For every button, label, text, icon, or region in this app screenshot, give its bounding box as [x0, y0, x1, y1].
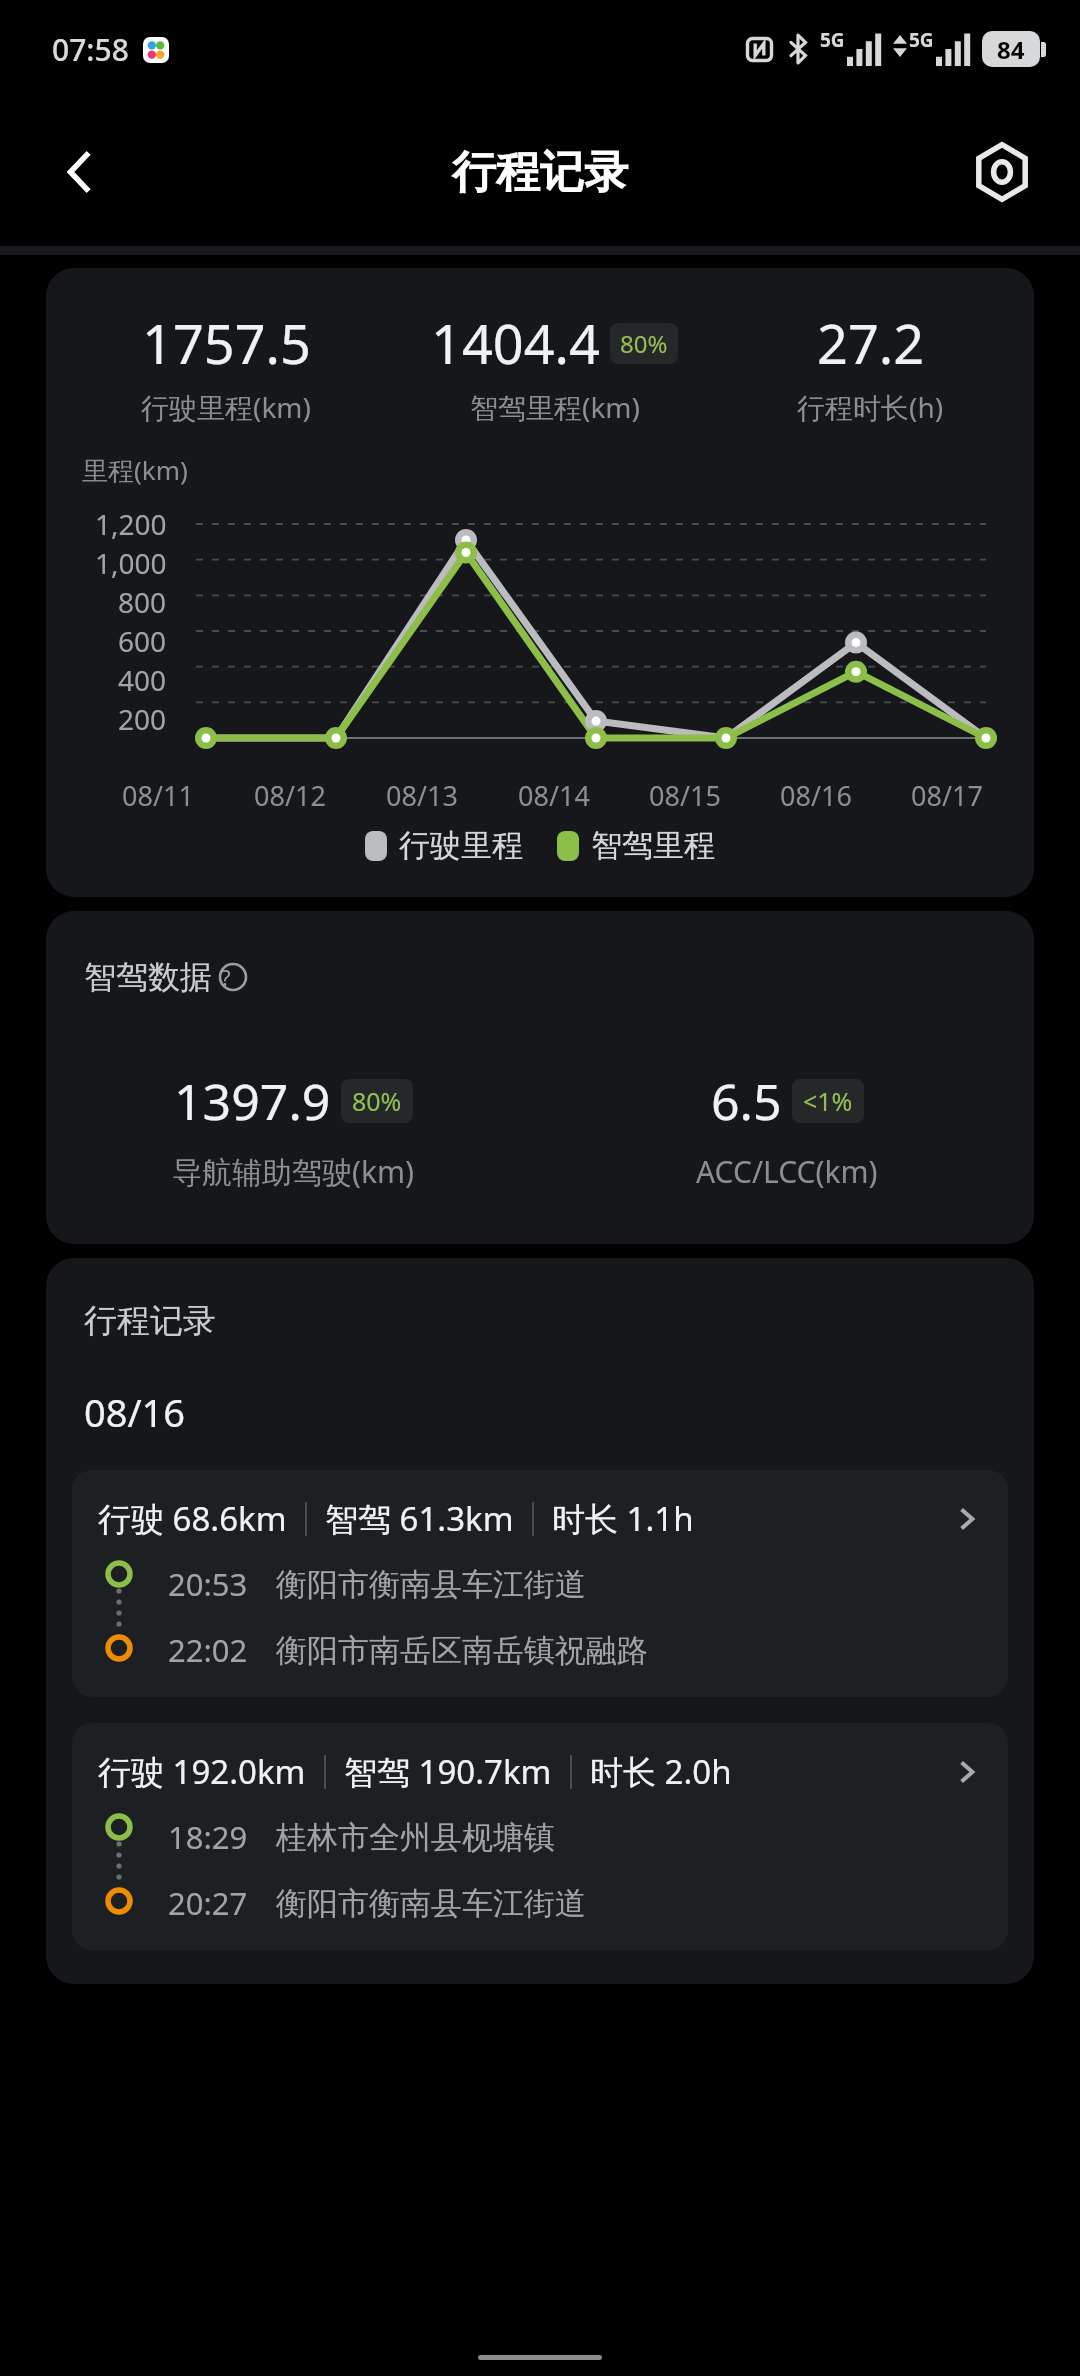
staticText: 1,200 [95, 505, 167, 543]
staticText: 智驾 61.3km [325, 1496, 514, 1541]
staticText: 行驶 68.6km [98, 1496, 287, 1541]
staticText: 行驶里程(km) [141, 388, 311, 426]
staticText: 08/16 [780, 777, 852, 814]
staticText: 08/11 [122, 777, 194, 814]
staticText: 智驾里程 [591, 826, 715, 865]
staticText: 80% [352, 1084, 402, 1118]
staticText: 衡阳市南岳区南岳镇祝融路 [276, 1631, 648, 1670]
staticText: 1397.9 [174, 1067, 331, 1135]
staticText: 200 [118, 700, 167, 738]
staticText: 行程记录 [84, 1300, 216, 1342]
staticText: 08/16 [84, 1386, 186, 1438]
staticText: 智驾 190.7km [344, 1749, 552, 1794]
button[interactable]: Back [40, 132, 120, 212]
button[interactable]: 行驶 192.0km [72, 1723, 1008, 1950]
staticText: 18:29 [168, 1816, 248, 1858]
staticText: 1404.4 [431, 306, 600, 380]
staticText: 22:02 [168, 1629, 248, 1671]
staticText: 1,000 [95, 544, 167, 582]
staticText: 衡阳市衡南县车江街道 [276, 1565, 586, 1604]
staticText: 08/15 [649, 777, 721, 814]
staticText: 行驶里程 [399, 826, 523, 865]
staticText: 6.5 [711, 1067, 782, 1135]
staticText: <1% [803, 1084, 853, 1118]
staticText: 600 [118, 622, 167, 660]
staticText: 智驾数据 [84, 957, 212, 997]
staticText: 时长 2.0h [590, 1749, 732, 1794]
staticText: 08/12 [254, 777, 326, 814]
button[interactable]: 智驾里程 [557, 826, 715, 865]
staticText: 智驾里程(km) [470, 388, 640, 426]
button[interactable]: 行驶里程 [365, 826, 523, 865]
staticText: 07:58 [52, 29, 129, 70]
staticText: 1757.5 [142, 306, 311, 380]
staticText: 80% [620, 327, 668, 360]
button[interactable]: Settings [962, 132, 1042, 212]
staticText: 行驶 192.0km [98, 1749, 306, 1794]
staticText: 5G [820, 27, 845, 53]
staticText: 里程(km) [82, 452, 188, 488]
staticText: 08/13 [386, 777, 458, 814]
staticText: 84 [997, 33, 1025, 66]
staticText: ? [221, 962, 231, 992]
staticText: 桂林市全州县枧塘镇 [276, 1818, 555, 1857]
staticText: 衡阳市衡南县车江街道 [276, 1884, 586, 1923]
staticText: ACC/LCC(km) [696, 1151, 878, 1192]
staticText: 400 [118, 661, 167, 699]
button[interactable]: 行驶 68.6km [72, 1470, 1008, 1697]
staticText: 行程时长(h) [797, 388, 944, 426]
staticText: 导航辅助驾驶(km) [172, 1151, 415, 1192]
staticText: 时长 1.1h [552, 1496, 694, 1541]
staticText: 5G [909, 27, 934, 53]
staticText: 20:53 [168, 1563, 248, 1605]
button[interactable]: 智驾数据 [84, 957, 258, 997]
staticText: 27.2 [817, 306, 925, 380]
staticText: 20:27 [168, 1882, 248, 1924]
staticText: 行程记录 [452, 145, 628, 200]
staticText: 08/14 [518, 777, 590, 814]
staticText: 08/17 [911, 777, 983, 814]
staticText: 800 [118, 583, 167, 621]
